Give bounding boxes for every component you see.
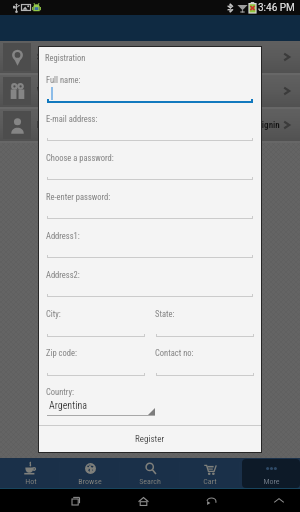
button[interactable]: My account (0, 109, 300, 141)
button[interactable]: Back (200, 490, 222, 512)
staticText: Choose a password: (46, 153, 114, 163)
button[interactable]: Wishlist (0, 75, 300, 107)
staticText: E-mail address: (46, 114, 98, 124)
staticText: Contact no: (155, 348, 194, 358)
button[interactable]: Expand (268, 490, 290, 512)
staticText: Search (139, 477, 161, 486)
staticText: Full name: (46, 75, 81, 85)
staticText: Signin (257, 120, 280, 131)
button[interactable]: More (242, 459, 300, 488)
staticText: Argentina (49, 400, 88, 412)
button[interactable]: Register (39, 426, 261, 452)
staticText: My account (37, 120, 79, 131)
staticText: Registration (45, 53, 86, 63)
staticText: Browse (78, 477, 102, 486)
button[interactable]: Search (120, 458, 180, 489)
button[interactable]: Home (132, 490, 154, 512)
button[interactable]: Browse (60, 458, 120, 489)
button[interactable]: Store locator (0, 41, 300, 73)
staticText: Wishlist (37, 86, 66, 97)
staticText: Zip code: (46, 348, 77, 358)
staticText: Hot (25, 477, 37, 486)
staticText: Store locator (37, 52, 84, 63)
staticText: 3:46 PM (258, 2, 295, 14)
button[interactable]: Recents (64, 490, 86, 512)
button[interactable]: Hot (0, 458, 60, 489)
staticText: Re-enter password: (46, 192, 111, 202)
staticText: City: (46, 309, 61, 319)
staticText: Register (135, 434, 165, 445)
staticText: Country: (46, 387, 75, 397)
button[interactable]: Cart (180, 458, 240, 489)
staticText: Address1: (46, 231, 80, 241)
staticText: Cart (203, 477, 217, 486)
staticText: Address2: (46, 270, 80, 280)
staticText: More (263, 477, 280, 486)
button[interactable]: Argentina (47, 399, 162, 416)
staticText: State: (155, 309, 175, 319)
